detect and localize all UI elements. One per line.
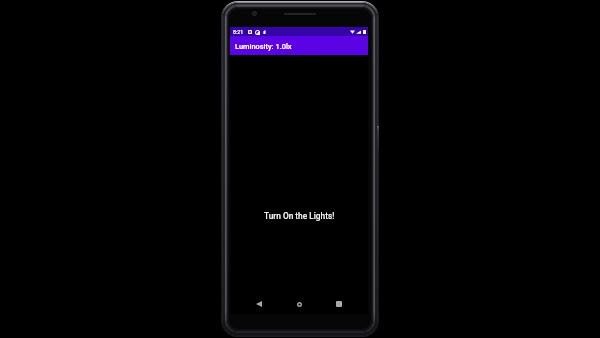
button[interactable]: Luminosity: 1.0lx bbox=[230, 36, 368, 55]
staticText: 8:21 bbox=[233, 29, 244, 35]
button[interactable]: Recents bbox=[329, 294, 349, 314]
button[interactable]: Home bbox=[289, 294, 309, 314]
button[interactable]: Back bbox=[249, 294, 269, 314]
staticText: Luminosity: 1.0lx bbox=[235, 42, 292, 51]
button[interactable]: Turn On the Lights! bbox=[264, 211, 335, 221]
